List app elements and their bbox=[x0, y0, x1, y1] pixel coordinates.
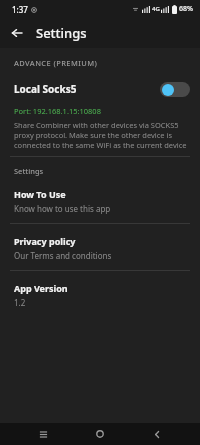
staticText: Our Terms and conditions bbox=[14, 250, 112, 261]
staticText: Port: 192.168.1.15:10808 bbox=[14, 106, 101, 116]
staticText: 1.2 bbox=[14, 297, 26, 308]
button[interactable]: Home bbox=[86, 423, 114, 445]
button[interactable]: Back bbox=[6, 22, 28, 44]
button[interactable]: How To Use bbox=[0, 188, 200, 214]
button[interactable]: Recent apps bbox=[29, 423, 57, 445]
staticText: Privacy policy bbox=[14, 235, 76, 247]
staticText: 4G bbox=[152, 5, 160, 13]
button[interactable]: Privacy policy bbox=[0, 235, 200, 261]
button[interactable]: Back bbox=[143, 423, 171, 445]
staticText: ADVANCE (PREMIUM) bbox=[14, 58, 98, 68]
staticText: Local Socks5 bbox=[14, 82, 77, 96]
button[interactable]: Local Socks5 toggle bbox=[160, 82, 190, 97]
staticText: Settings bbox=[14, 166, 44, 176]
staticText: App Version bbox=[14, 282, 68, 294]
staticText: Share Combiner with other devices via SO… bbox=[14, 120, 190, 150]
staticText: Know how to use this app bbox=[14, 203, 111, 214]
staticText: 68% bbox=[179, 4, 193, 14]
button[interactable]: App Version bbox=[0, 282, 200, 308]
staticText: 1:37 bbox=[12, 4, 28, 15]
staticText: Settings bbox=[36, 24, 87, 42]
button[interactable]: Local Socks5 bbox=[0, 78, 200, 100]
staticText: How To Use bbox=[14, 188, 66, 200]
